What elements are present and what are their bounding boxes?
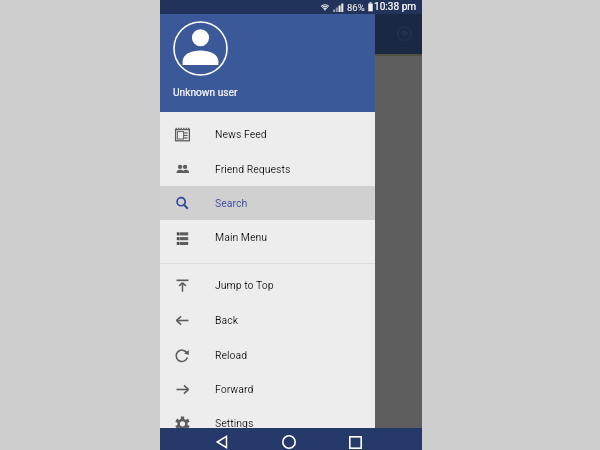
staticText: Main Menu — [215, 231, 268, 243]
staticText: Reload — [215, 349, 248, 361]
button[interactable]: Settings — [160, 406, 375, 428]
staticText: 10:38 pm — [374, 1, 417, 13]
staticText: News Feed — [215, 128, 267, 140]
staticText: Settings — [215, 417, 254, 428]
button[interactable]: Reload — [160, 338, 375, 372]
button[interactable]: Forward — [160, 372, 375, 406]
staticText: Jump to Top — [215, 279, 274, 291]
staticText: Back — [215, 314, 239, 326]
button[interactable]: Home — [282, 435, 296, 449]
staticText: Unknown user — [173, 87, 238, 99]
button[interactable]: Jump to Top — [160, 268, 375, 302]
button[interactable]: News Feed — [160, 117, 375, 151]
button[interactable]: Back — [160, 303, 375, 337]
button[interactable]: Search — [160, 186, 375, 220]
button[interactable]: Recent apps — [349, 436, 362, 449]
button[interactable]: Friend Requests — [160, 152, 375, 186]
button[interactable]: Back — [215, 435, 229, 449]
staticText: Friend Requests — [215, 163, 291, 175]
staticText: Forward — [215, 383, 254, 395]
button[interactable]: Main Menu — [160, 220, 375, 254]
staticText: Search — [215, 197, 248, 209]
staticText: 86% — [347, 2, 365, 13]
